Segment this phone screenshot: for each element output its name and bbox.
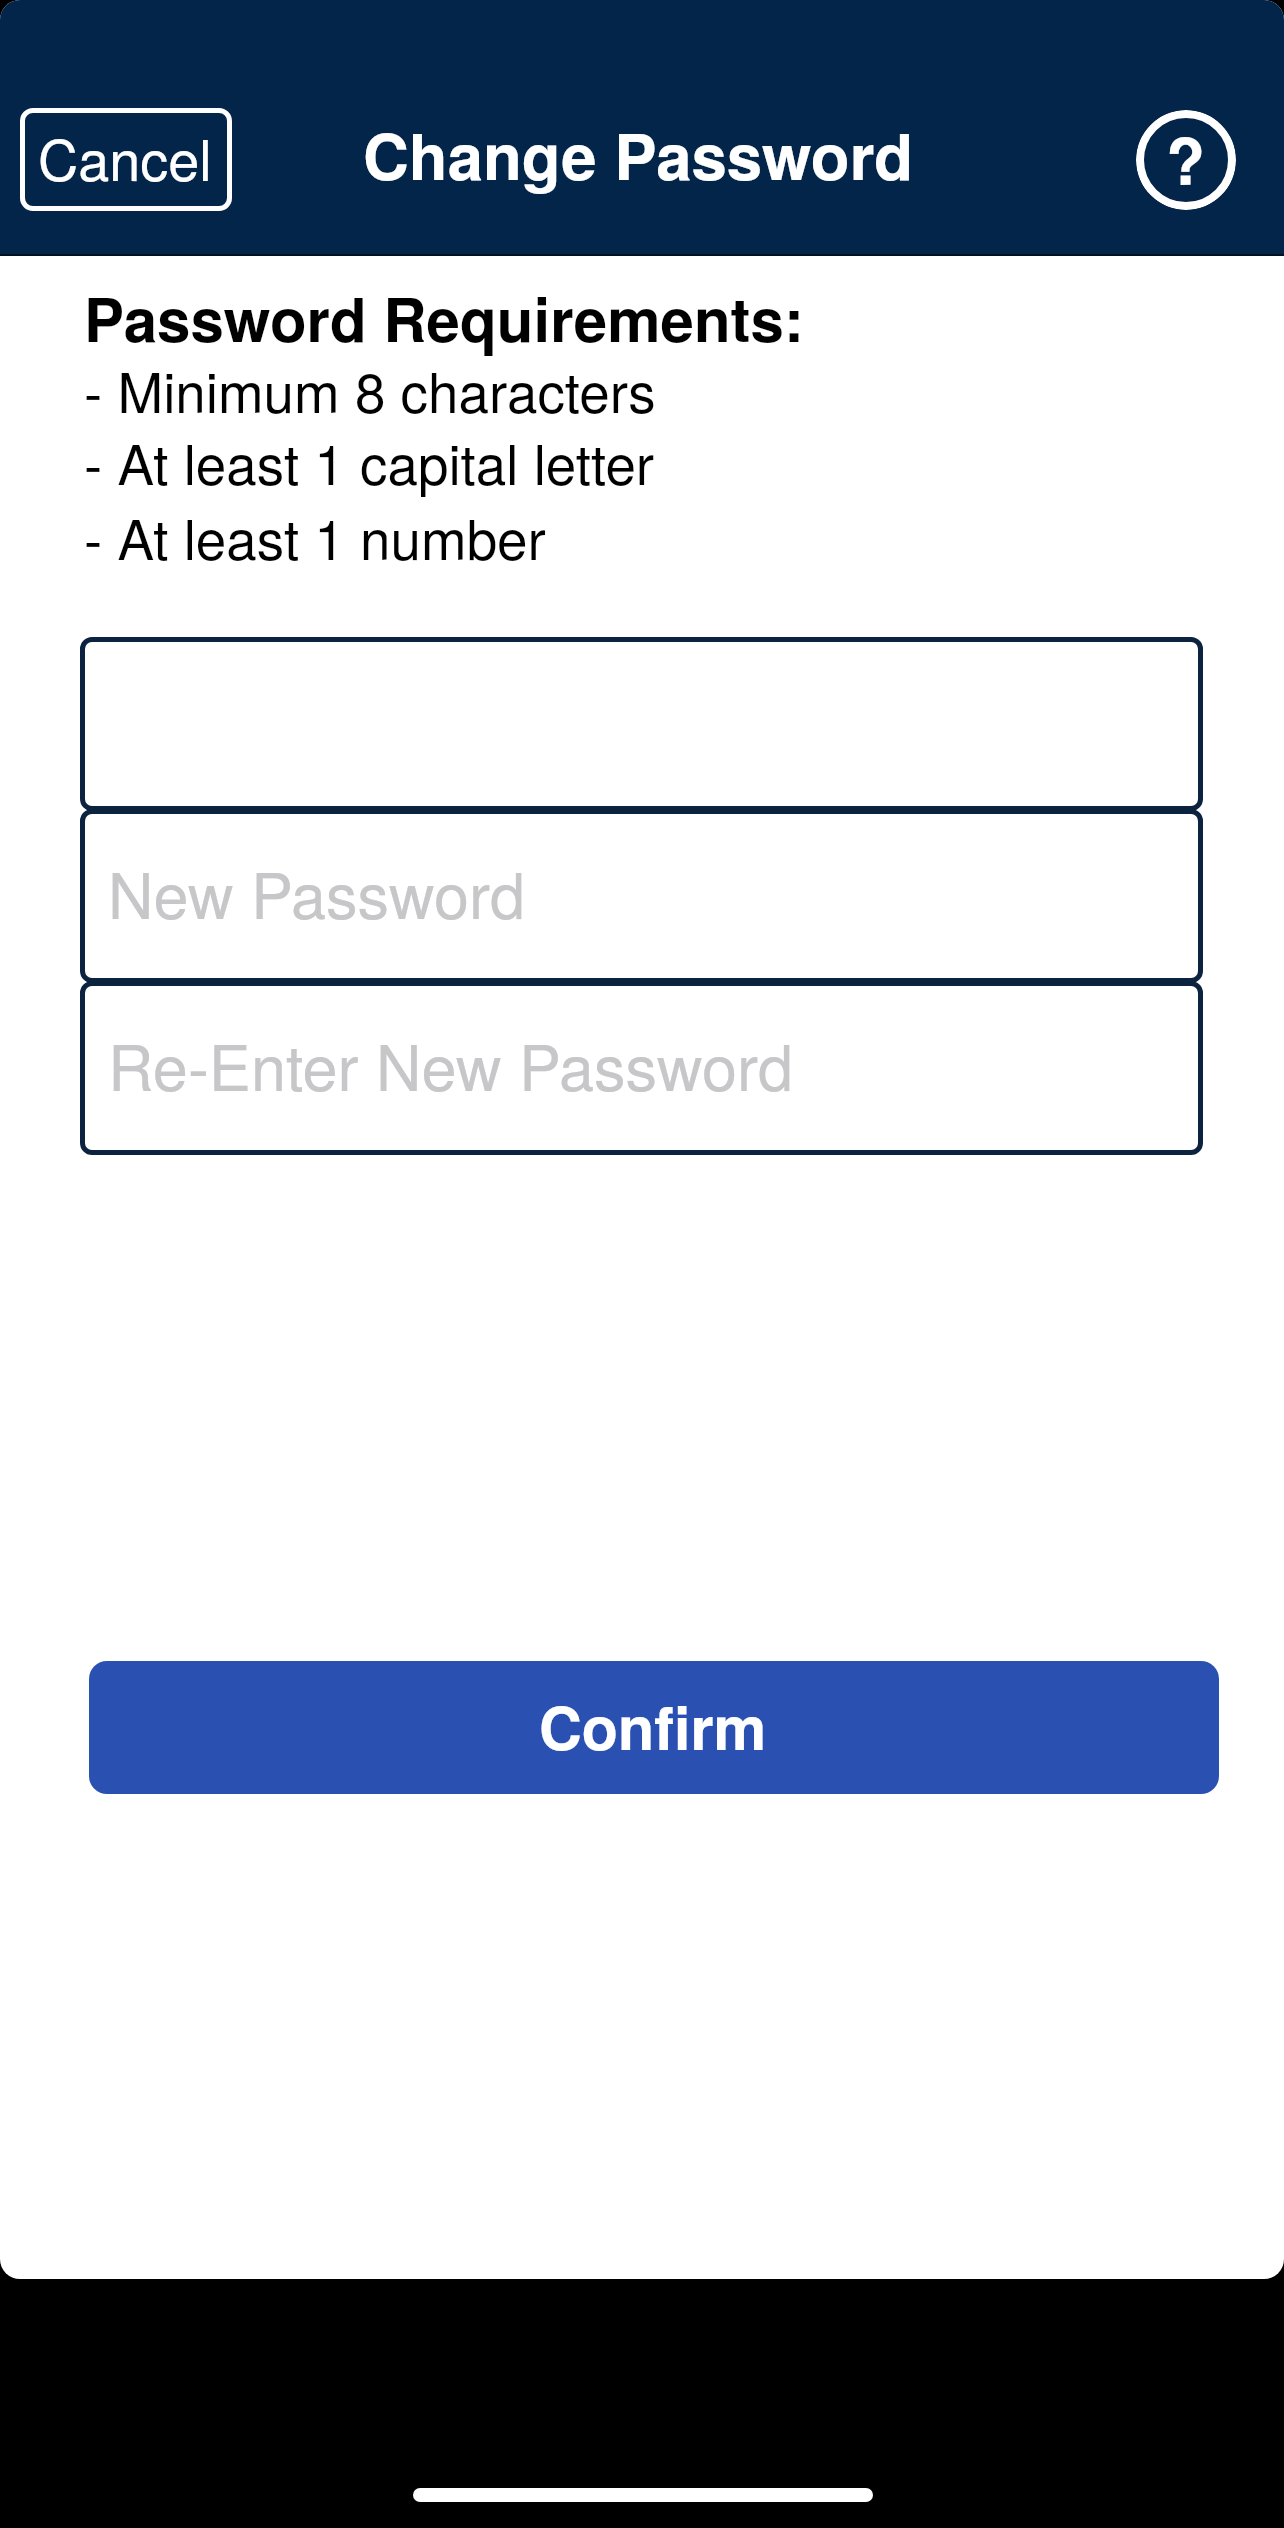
staticText: Confirm — [539, 1683, 767, 1768]
button[interactable]: Current Password — [80, 637, 1203, 811]
staticText: - At least 1 number — [84, 497, 546, 575]
staticText: ? — [1166, 113, 1206, 205]
button[interactable]: Help — [1136, 110, 1236, 210]
button[interactable]: Cancel — [20, 108, 232, 211]
staticText: - Minimum 8 characters — [84, 350, 656, 428]
staticText: Password Requirements: — [84, 274, 804, 360]
staticText: Re-Enter New Password — [108, 1019, 793, 1109]
button[interactable]: Re-Enter New Password — [80, 981, 1203, 1155]
staticText: Change Password — [363, 109, 914, 200]
button[interactable]: New Password — [80, 809, 1203, 983]
button[interactable]: Confirm — [89, 1661, 1219, 1794]
staticText: New Password — [108, 847, 525, 937]
staticText: - At least 1 capital letter — [84, 422, 655, 500]
staticText: Cancel — [38, 117, 212, 197]
